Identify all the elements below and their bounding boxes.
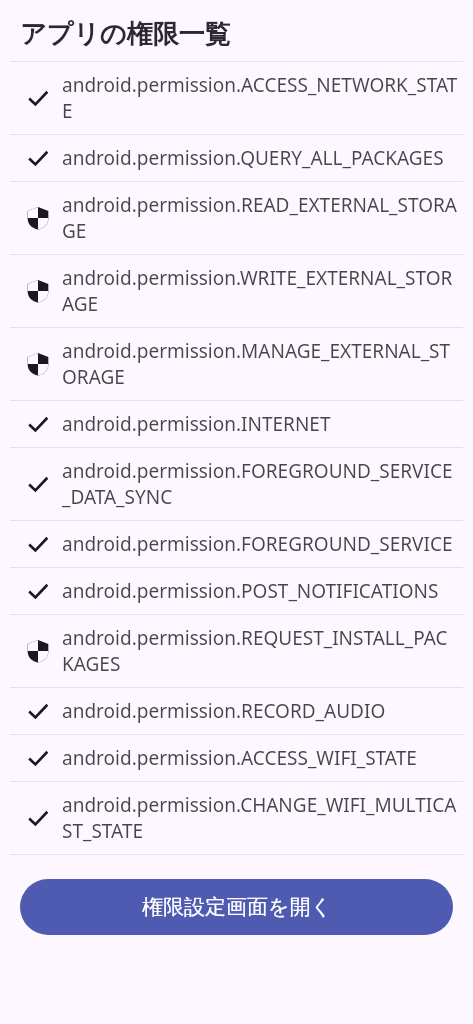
button[interactable]: Granted <box>0 62 473 134</box>
other: Granted <box>25 85 51 111</box>
staticText: android.permission.MANAGE_EXTERNAL_STORA… <box>62 338 459 390</box>
staticText: android.permission.FOREGROUND_SERVICE_DA… <box>62 458 459 510</box>
other: Dangerous permission <box>26 639 50 663</box>
other: Granted <box>25 531 51 557</box>
staticText: android.permission.ACCESS_NETWORK_STATE <box>62 72 459 124</box>
staticText: 権限設定画面を開く <box>142 894 332 920</box>
staticText: android.permission.QUERY_ALL_PACKAGES <box>62 145 459 171</box>
button[interactable]: Granted <box>0 735 473 781</box>
button[interactable]: Granted <box>0 448 473 520</box>
button[interactable]: Dangerous permission <box>0 182 473 254</box>
other: Granted <box>25 578 51 604</box>
other: Granted <box>25 745 51 771</box>
staticText: android.permission.RECORD_AUDIO <box>62 698 459 724</box>
button[interactable]: Dangerous permission <box>0 328 473 400</box>
staticText: android.permission.READ_EXTERNAL_STORAGE <box>62 192 459 244</box>
other: Granted <box>25 411 51 437</box>
staticText: android.permission.CHANGE_WIFI_MULTICAST… <box>62 792 459 844</box>
button[interactable]: 権限設定画面を開く <box>20 879 453 935</box>
button[interactable]: Dangerous permission <box>0 255 473 327</box>
staticText: android.permission.FOREGROUND_SERVICE <box>62 531 459 557</box>
button[interactable]: Granted <box>0 521 473 567</box>
other: Granted <box>25 805 51 831</box>
button[interactable]: Dangerous permission <box>0 615 473 687</box>
other: Dangerous permission <box>26 279 50 303</box>
button[interactable]: Granted <box>0 401 473 447</box>
staticText: android.permission.REQUEST_INSTALL_PACKA… <box>62 625 459 677</box>
button[interactable]: Granted <box>0 568 473 614</box>
button[interactable]: Granted <box>0 782 473 854</box>
other: Dangerous permission <box>26 352 50 376</box>
button[interactable]: Granted <box>0 135 473 181</box>
staticText: android.permission.WRITE_EXTERNAL_STORAG… <box>62 265 459 317</box>
other: Dangerous permission <box>26 206 50 230</box>
other: Granted <box>25 471 51 497</box>
staticText: android.permission.ACCESS_WIFI_STATE <box>62 745 459 771</box>
staticText: アプリの権限一覧 <box>20 18 231 51</box>
staticText: android.permission.INTERNET <box>62 411 459 437</box>
other: Granted <box>25 145 51 171</box>
other: Granted <box>25 698 51 724</box>
button[interactable]: Granted <box>0 688 473 734</box>
staticText: android.permission.POST_NOTIFICATIONS <box>62 578 459 604</box>
